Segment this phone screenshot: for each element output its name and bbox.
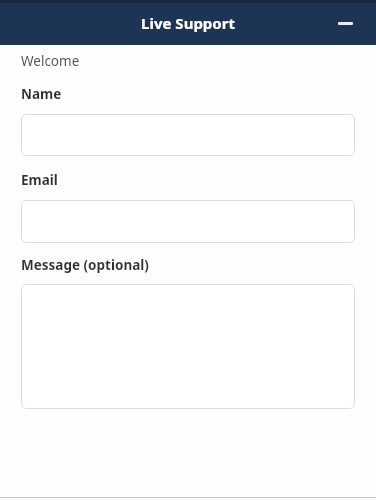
button[interactable]: Message input field (21, 284, 355, 409)
staticText: Email (21, 171, 58, 189)
staticText: Name (21, 85, 62, 103)
staticText: Live Support (0, 13, 376, 33)
button[interactable]: Minimize (332, 10, 358, 36)
staticText: Welcome (21, 52, 80, 70)
button[interactable]: Email input field (21, 200, 355, 243)
button[interactable]: Name input field (21, 114, 355, 156)
staticText: Message (optional) (21, 256, 149, 274)
